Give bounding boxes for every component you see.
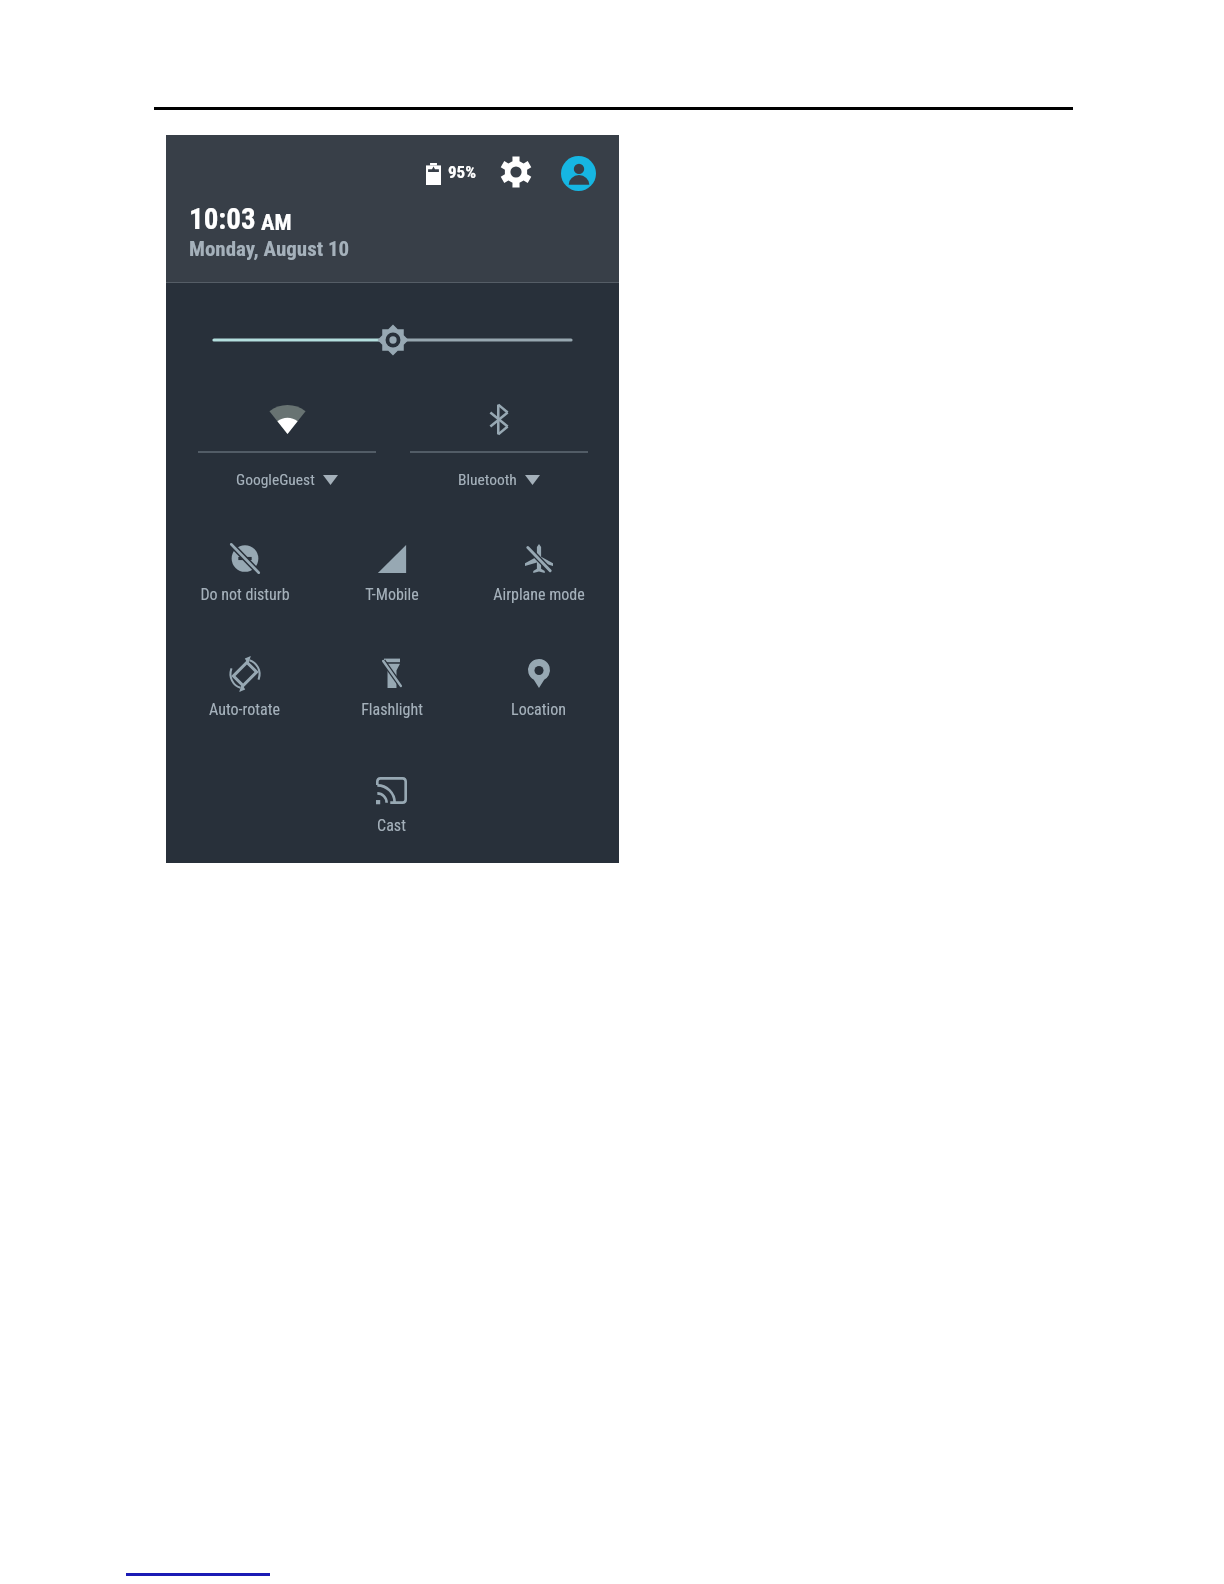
button[interactable]: Bluetooth <box>410 468 588 492</box>
button[interactable]: User account <box>556 151 600 195</box>
staticText: Monday, August 10 <box>189 237 350 262</box>
staticText: T-Mobile <box>365 585 419 604</box>
staticText: AM <box>261 209 292 235</box>
staticText: 10:03 <box>189 202 256 236</box>
button[interactable]: Location <box>465 650 612 750</box>
button[interactable]: Cast <box>318 766 465 866</box>
staticText: Auto-rotate <box>209 700 280 719</box>
button[interactable]: Do not disturb <box>171 535 318 635</box>
staticText: Airplane mode <box>493 585 585 604</box>
button[interactable]: Airplane mode <box>465 535 612 635</box>
button[interactable]: Settings <box>497 153 535 191</box>
staticText: GoogleGuest <box>236 471 315 489</box>
button[interactable]: T-Mobile <box>318 535 465 635</box>
staticText: Flashlight <box>361 700 423 719</box>
button[interactable]: GoogleGuest <box>198 468 376 492</box>
button[interactable]: Auto-rotate <box>171 650 318 750</box>
staticText: Bluetooth <box>458 471 517 489</box>
staticText: 95% <box>448 162 477 182</box>
button[interactable]: Flashlight <box>318 650 465 750</box>
staticText: Do not disturb <box>200 585 290 604</box>
staticText: Cast <box>377 816 406 835</box>
staticText: Location <box>511 700 566 719</box>
